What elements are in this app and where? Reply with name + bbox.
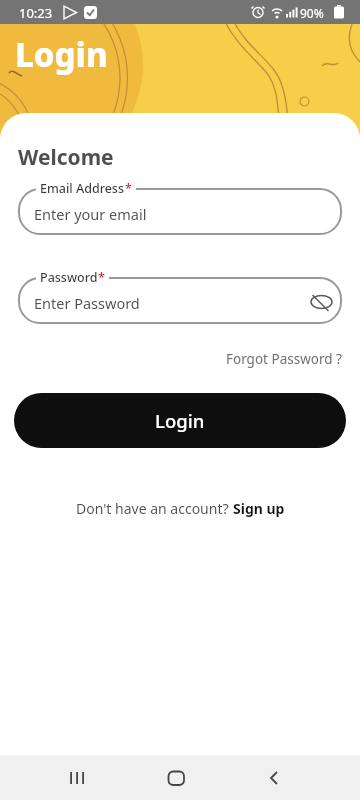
staticText: Enter your email xyxy=(34,204,147,224)
staticText: * xyxy=(125,180,132,197)
button[interactable]: Enter Password xyxy=(18,277,342,324)
staticText: Email Address xyxy=(40,180,125,197)
staticText: Don't have an account? xyxy=(76,499,233,518)
staticText: * xyxy=(98,269,105,286)
button[interactable] xyxy=(304,287,332,315)
staticText: Password xyxy=(40,269,98,286)
staticText: Welcome xyxy=(18,143,114,172)
staticText: Login xyxy=(15,32,108,77)
staticText: Enter Password xyxy=(34,293,140,313)
staticText: 90% xyxy=(300,5,324,21)
button[interactable] xyxy=(162,765,190,791)
button[interactable] xyxy=(62,765,90,791)
button[interactable] xyxy=(260,765,288,791)
button[interactable]: Forgot Password ? xyxy=(226,350,342,368)
button[interactable]: Sign up xyxy=(233,499,285,518)
button[interactable]: Enter your email xyxy=(18,188,342,235)
button[interactable]: Login xyxy=(14,393,346,448)
staticText: 10:23 xyxy=(19,4,53,22)
staticText: Login xyxy=(155,408,205,433)
